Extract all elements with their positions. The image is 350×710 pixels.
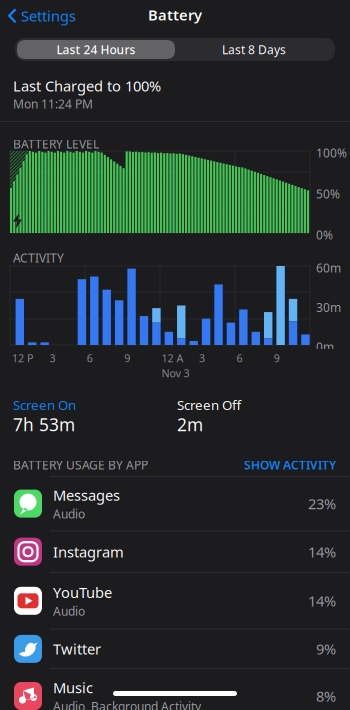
staticText: BATTERY USAGE BY APP	[13, 457, 148, 473]
button[interactable]: Music	[0, 669, 350, 710]
staticText: Last 24 Hours	[56, 41, 135, 57]
staticText: 0%	[316, 227, 333, 243]
staticText: 50%	[316, 186, 340, 202]
staticText: Nov 3	[162, 366, 190, 380]
staticText: 60m	[316, 260, 341, 276]
staticText: Mon 11:24 PM	[13, 96, 93, 112]
button[interactable]: Messages	[0, 477, 350, 531]
staticText: 8%	[316, 686, 336, 706]
staticText: Audio	[53, 603, 85, 619]
button[interactable]: Instagram	[0, 531, 350, 572]
staticText: 100%	[316, 145, 347, 161]
staticText: Twitter	[53, 639, 101, 659]
staticText: 6	[87, 351, 93, 365]
staticText: 14%	[308, 591, 336, 611]
button[interactable]: Twitter	[0, 629, 350, 668]
staticText: Last 8 Days	[222, 41, 286, 57]
staticText: Audio	[53, 506, 85, 522]
button[interactable]: Last 8 Days	[175, 40, 333, 59]
button[interactable]: SHOW ACTIVITY	[240, 454, 340, 476]
staticText: Messages	[53, 485, 120, 505]
staticText: Music	[53, 678, 93, 697]
staticText: ACTIVITY	[13, 250, 64, 266]
staticText: 2m	[177, 413, 203, 436]
staticText: 30m	[316, 299, 341, 315]
button[interactable]: Settings	[0, 3, 84, 28]
staticText: 12 P	[12, 351, 33, 365]
staticText: Battery	[148, 5, 202, 24]
button[interactable]: Last 24 Hours	[17, 40, 175, 59]
staticText: 9	[274, 351, 280, 365]
staticText: 14%	[308, 542, 336, 561]
staticText: Settings	[21, 6, 76, 25]
staticText: 3	[199, 351, 205, 365]
staticText: SHOW ACTIVITY	[244, 457, 336, 473]
staticText: Audio, Background Activity	[53, 698, 201, 710]
staticText: 23%	[308, 494, 336, 513]
staticText: 9	[124, 351, 130, 365]
staticText: 6	[236, 351, 242, 365]
staticText: 0m	[316, 339, 334, 355]
staticText: 9%	[316, 639, 336, 659]
staticText: Last Charged to 100%	[13, 76, 161, 95]
staticText: Screen On	[13, 396, 76, 414]
staticText: Screen Off	[177, 396, 241, 414]
staticText: 7h 53m	[13, 413, 75, 436]
staticText: YouTube	[53, 583, 112, 602]
staticText: Instagram	[53, 542, 124, 561]
staticText: BATTERY LEVEL	[13, 136, 99, 152]
staticText: 12 A	[162, 351, 184, 365]
button[interactable]: YouTube	[0, 573, 350, 629]
staticText: 3	[49, 351, 55, 365]
